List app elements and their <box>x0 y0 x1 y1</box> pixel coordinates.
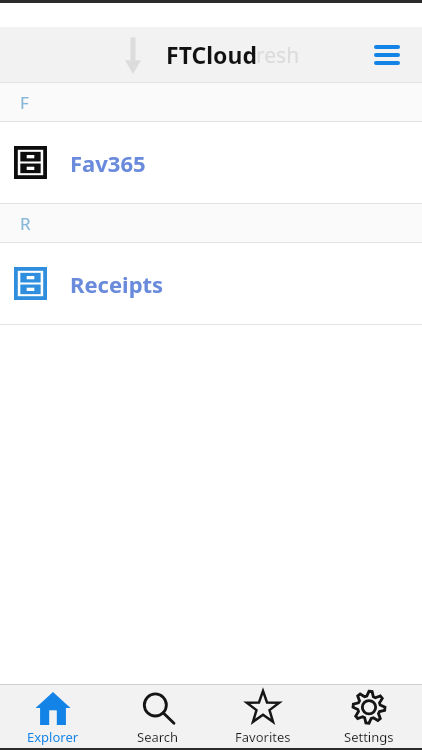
staticText: Receipts <box>70 269 164 299</box>
button[interactable]: Search <box>105 685 210 748</box>
button[interactable]: Fav365 <box>0 122 422 203</box>
staticText: F <box>20 91 29 114</box>
staticText: Search <box>137 728 179 746</box>
staticText: Fav365 <box>70 148 146 178</box>
button[interactable]: Explorer <box>0 685 105 748</box>
button[interactable]: Favorites <box>210 685 316 748</box>
staticText: R <box>20 212 31 235</box>
button[interactable]: Settings <box>316 685 422 748</box>
staticText: Settings <box>344 728 394 746</box>
button[interactable]: Receipts <box>0 243 422 324</box>
staticText: Explorer <box>27 728 79 746</box>
staticText: Favorites <box>235 728 291 746</box>
staticText: resh <box>256 41 300 70</box>
staticText: FTCloud <box>166 39 257 70</box>
button[interactable]: Menu <box>364 32 410 78</box>
